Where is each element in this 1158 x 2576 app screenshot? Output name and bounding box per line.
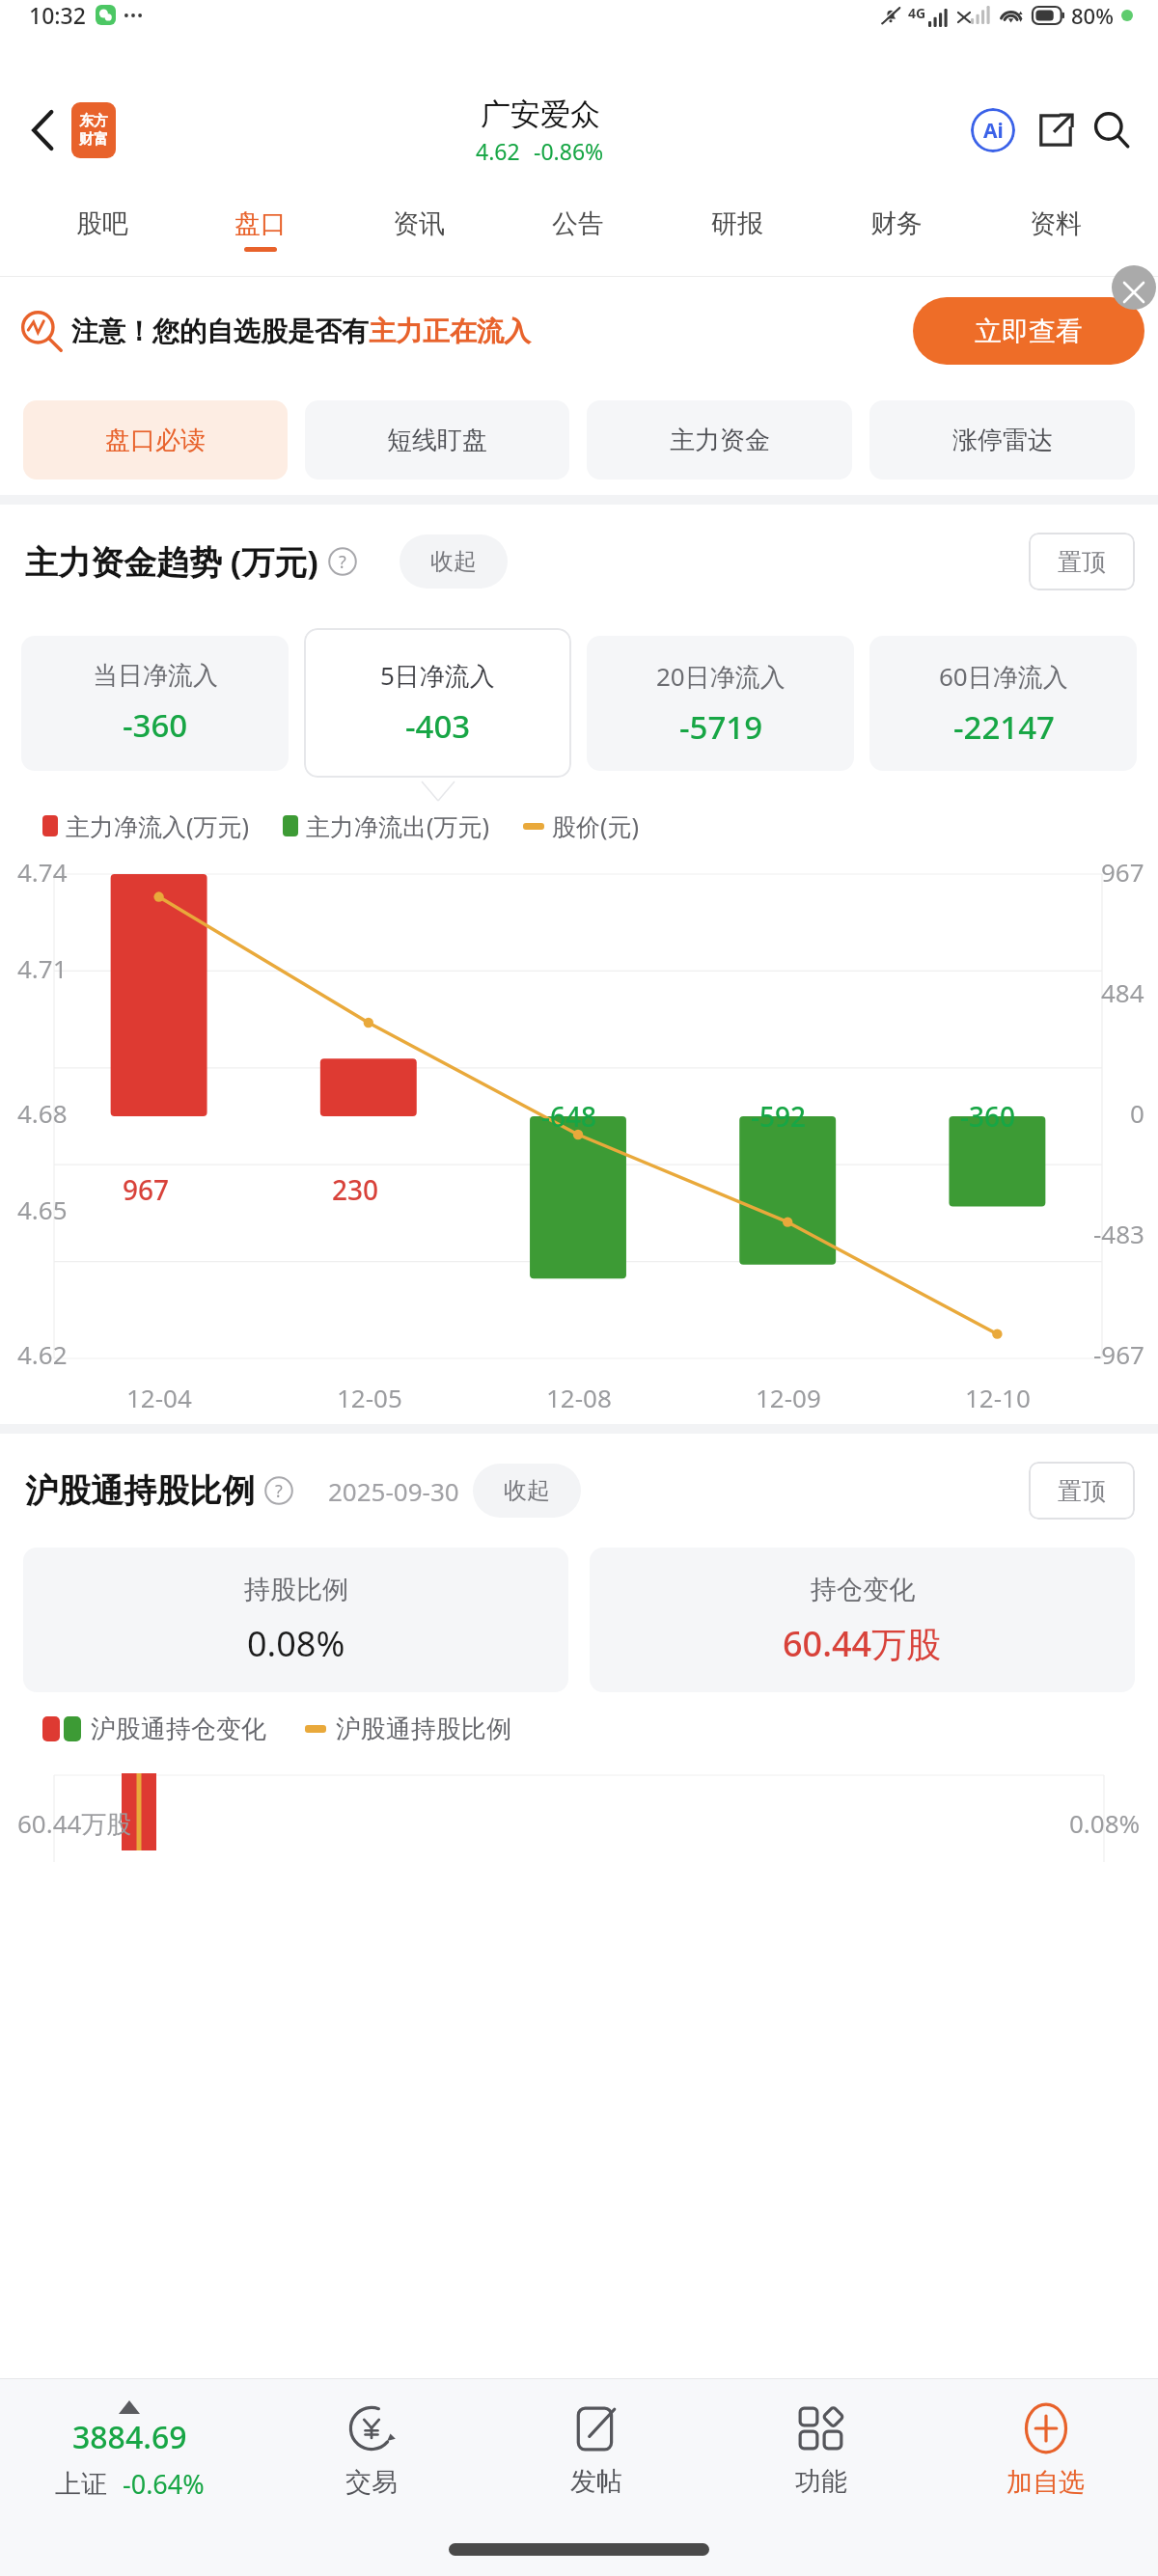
- staticText: ?: [275, 1479, 283, 1503]
- staticText: 4G: [908, 4, 926, 22]
- button[interactable]: 资料: [976, 183, 1135, 276]
- staticText: 交易: [345, 2466, 398, 2499]
- staticText: -360: [960, 1098, 1016, 1135]
- button[interactable]: Back: [15, 102, 71, 158]
- staticText: 当日净流入: [93, 660, 218, 692]
- button[interactable]: 收起: [473, 1464, 581, 1518]
- staticText: 0.08%: [247, 1620, 345, 1667]
- staticText: -22147: [953, 705, 1055, 749]
- button[interactable]: 当日净流入: [21, 636, 289, 771]
- button[interactable]: 资讯: [340, 183, 498, 276]
- staticText: 持股比例: [244, 1574, 348, 1606]
- button[interactable]: Share: [1031, 105, 1081, 155]
- staticText: 股吧: [76, 207, 128, 240]
- staticText: 0: [1130, 1096, 1144, 1130]
- staticText: 60.44万股: [783, 1620, 942, 1667]
- staticText: 主力资金: [670, 425, 770, 456]
- staticText: 上证: [55, 2468, 107, 2501]
- staticText: 4.74: [17, 855, 68, 889]
- staticText: 广安爱众: [481, 96, 600, 133]
- staticText: 加自选: [1006, 2466, 1085, 2499]
- button[interactable]: 立即查看: [913, 297, 1144, 365]
- button[interactable]: Close ad: [1112, 265, 1156, 310]
- staticText: -592: [751, 1098, 807, 1135]
- button[interactable]: 盘口: [181, 183, 340, 276]
- button[interactable]: Functions: [708, 2379, 933, 2522]
- staticText: -360: [123, 703, 188, 747]
- button[interactable]: 20日净流入: [587, 636, 854, 771]
- staticText: 主力净流入(万元): [66, 809, 250, 842]
- staticText: 财务: [870, 207, 923, 240]
- staticText: 公告: [552, 207, 604, 240]
- staticText: 注意！您的自选股是否有: [71, 315, 369, 348]
- button[interactable]: Add to watchlist: [933, 2379, 1158, 2522]
- staticText: 收起: [430, 547, 477, 576]
- staticText: 60.44万股: [17, 1806, 132, 1841]
- staticText: 东方: [79, 112, 108, 130]
- staticText: ?: [339, 550, 346, 574]
- button[interactable]: AI assistant: [965, 102, 1021, 158]
- staticText: 5日净流入: [380, 658, 495, 693]
- button[interactable]: 财务: [816, 183, 976, 276]
- button[interactable]: 盘口必读: [23, 400, 288, 480]
- button[interactable]: Search: [1087, 105, 1137, 155]
- staticText: 10:32: [29, 0, 86, 30]
- staticText: 12-08: [546, 1381, 612, 1414]
- staticText: -403: [405, 704, 471, 748]
- button[interactable]: 收起: [400, 534, 508, 589]
- button[interactable]: 60日净流入: [869, 636, 1137, 771]
- staticText: -5719: [679, 705, 763, 749]
- button[interactable]: Trade: [259, 2379, 483, 2522]
- staticText: 3884.69: [72, 2416, 187, 2458]
- staticText: 功能: [795, 2465, 847, 2498]
- staticText: 资料: [1030, 207, 1082, 240]
- staticText: 4.68: [17, 1096, 68, 1130]
- button[interactable]: 东方财富: [71, 102, 116, 158]
- button[interactable]: 3884.69: [0, 2379, 259, 2522]
- staticText: 484: [1101, 975, 1144, 1009]
- button[interactable]: 5日净流入: [304, 628, 571, 778]
- staticText: 发帖: [570, 2465, 622, 2498]
- staticText: -0.86%: [534, 136, 604, 166]
- staticText: 沪股通持仓变化: [91, 1713, 266, 1745]
- button[interactable]: 置顶: [1029, 533, 1135, 590]
- staticText: -648: [541, 1098, 597, 1135]
- staticText: 0.08%: [1069, 1806, 1141, 1840]
- staticText: 沪股通持股比例: [336, 1713, 511, 1745]
- button[interactable]: 主力资金: [587, 400, 852, 480]
- staticText: 置顶: [1058, 547, 1106, 577]
- staticText: 短线盯盘: [387, 425, 487, 456]
- staticText: 4.62: [476, 136, 520, 166]
- staticText: 230: [332, 1171, 379, 1208]
- staticText: -483: [1093, 1217, 1144, 1250]
- button[interactable]: 研报: [657, 183, 816, 276]
- staticText: 财富: [79, 130, 108, 149]
- staticText: 盘口: [234, 207, 287, 240]
- staticText: 股价(元): [552, 809, 640, 842]
- staticText: 4.62: [17, 1337, 68, 1371]
- staticText: 立即查看: [975, 315, 1083, 348]
- button[interactable]: 公告: [498, 183, 657, 276]
- button[interactable]: 持股比例: [23, 1548, 568, 1692]
- button[interactable]: 股吧: [23, 183, 181, 276]
- staticText: 4.71: [17, 951, 68, 985]
- staticText: 主力净流出(万元): [306, 809, 490, 842]
- staticText: -967: [1093, 1337, 1144, 1371]
- button[interactable]: 持仓变化: [590, 1548, 1135, 1692]
- staticText: 967: [123, 1171, 170, 1208]
- staticText: 主力资金趋势 (万元): [25, 539, 318, 584]
- button[interactable]: 短线盯盘: [305, 400, 569, 480]
- staticText: 持仓变化: [811, 1574, 915, 1606]
- staticText: Ai: [983, 117, 1004, 145]
- staticText: 967: [1101, 855, 1144, 889]
- button[interactable]: 涨停雷达: [869, 400, 1135, 480]
- staticText: 4.65: [17, 1192, 68, 1226]
- button[interactable]: Post: [483, 2379, 708, 2522]
- staticText: 12-04: [126, 1381, 192, 1414]
- staticText: -0.64%: [123, 2466, 205, 2502]
- button[interactable]: 置顶: [1029, 1462, 1135, 1520]
- staticText: 盘口必读: [105, 425, 206, 456]
- staticText: 60日净流入: [939, 659, 1068, 694]
- staticText: 80%: [1071, 1, 1114, 30]
- staticText: 20日净流入: [656, 659, 786, 694]
